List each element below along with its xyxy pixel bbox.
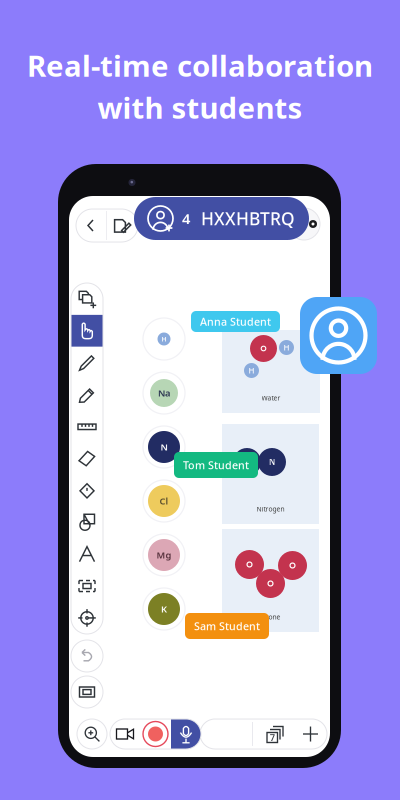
button[interactable]: Magnesium (143, 534, 185, 576)
button[interactable]: 4 (134, 197, 309, 240)
button[interactable]: Collaborator avatar (300, 297, 377, 374)
staticText: H (283, 342, 289, 353)
button[interactable]: Shapes (71, 506, 103, 538)
button[interactable]: Chlorine (143, 480, 185, 522)
staticText: H (161, 335, 166, 343)
staticText: N (269, 457, 275, 467)
staticText: Water (261, 394, 280, 402)
button[interactable]: Zoom in (77, 719, 107, 749)
staticText: 4 (182, 209, 190, 228)
staticText: Real-time collaboration (27, 46, 373, 85)
button[interactable]: Pages (257, 719, 294, 749)
button[interactable]: Ruler (71, 411, 103, 442)
button[interactable]: Back (76, 209, 106, 242)
button[interactable]: Hydrogen (143, 318, 185, 360)
button[interactable]: Eraser (71, 442, 103, 474)
button[interactable]: Video (110, 719, 140, 749)
button[interactable]: Laser pointer (71, 602, 103, 634)
button[interactable]: Pen (71, 347, 103, 379)
staticText: Cl (159, 495, 168, 507)
staticText: Nitrogen (256, 505, 284, 513)
staticText: N (160, 441, 167, 453)
staticText: Mg (156, 549, 171, 561)
staticText: Anna Student (200, 314, 271, 329)
button[interactable]: Record (140, 719, 171, 749)
button[interactable]: Selection (71, 570, 103, 602)
button[interactable]: More options (288, 208, 320, 240)
button[interactable]: Text (71, 538, 103, 570)
staticText: K (161, 603, 167, 615)
button[interactable]: Add page (294, 719, 327, 749)
staticText: HXXHBTRQ (201, 207, 295, 230)
staticText: Tom Student (183, 458, 249, 472)
button[interactable]: Highlighter (71, 379, 103, 411)
button[interactable]: Fill (71, 474, 103, 506)
button[interactable]: Compose (106, 209, 138, 242)
staticText: Sam Student (194, 619, 260, 633)
staticText: 7 (270, 731, 275, 744)
button[interactable]: Sodium (143, 372, 185, 414)
staticText: Na (158, 387, 170, 399)
staticText: H (248, 365, 254, 376)
button[interactable]: Undo (71, 640, 103, 672)
button[interactable]: Potassium (143, 588, 185, 630)
staticText: with students (97, 88, 302, 127)
staticText: Ozone (260, 613, 280, 621)
button[interactable]: New page (71, 283, 103, 315)
button[interactable]: Microphone (171, 719, 201, 749)
button[interactable]: Nitrogen (143, 426, 185, 468)
button[interactable]: Select (71, 315, 103, 347)
button[interactable]: Presentation mode (71, 676, 103, 708)
